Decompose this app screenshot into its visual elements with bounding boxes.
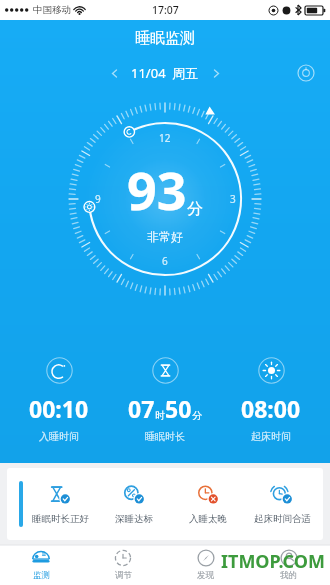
staticText: 分 [192, 409, 202, 422]
staticText: 我的 [280, 570, 297, 581]
button[interactable]: 入睡太晚 [171, 468, 245, 540]
staticText: 起床时间合适 [254, 513, 311, 525]
staticText: 17:07 [152, 3, 179, 17]
staticText: 非常好 [147, 229, 183, 244]
staticText: 睡眠时长 [145, 430, 185, 443]
button[interactable]: Sync [294, 61, 318, 85]
staticText: 3 [230, 192, 236, 206]
staticText: 发现 [197, 570, 214, 581]
button[interactable]: 起床时间合适 [245, 468, 319, 540]
staticText: 11/04 周五 [131, 64, 199, 82]
staticText: 睡眠监测 [135, 29, 195, 48]
staticText: 中国移动 [33, 4, 71, 16]
button[interactable]: Next day [203, 60, 229, 86]
staticText: ITMOP.COM [221, 549, 326, 574]
staticText: 起床时间 [251, 430, 291, 443]
staticText: 分 [187, 199, 203, 219]
staticText: 睡眠时长正好 [32, 513, 89, 525]
staticText: 调节 [115, 570, 132, 581]
button[interactable]: 00:10 [6, 357, 112, 443]
staticText: 9 [95, 192, 101, 206]
staticText: 入睡太晚 [189, 513, 227, 525]
button[interactable]: 发现 [164, 545, 247, 585]
staticText: 12 [159, 131, 171, 145]
staticText: 6 [162, 254, 168, 268]
staticText: 深睡达标 [115, 513, 153, 525]
button[interactable]: 我的 [247, 545, 330, 585]
button[interactable]: 调节 [82, 545, 164, 585]
staticText: 50 [165, 393, 192, 424]
button[interactable]: 深睡达标 [97, 468, 171, 540]
staticText: 监测 [33, 570, 50, 581]
button[interactable]: 睡眠时长正好 [23, 468, 97, 540]
staticText: 08:00 [241, 393, 301, 424]
button[interactable]: 07 [112, 357, 218, 443]
staticText: 时 [155, 409, 165, 422]
staticText: 00:10 [29, 393, 89, 424]
button[interactable]: 监测 [0, 545, 82, 585]
staticText: 93 [127, 154, 187, 225]
button[interactable]: 08:00 [218, 357, 324, 443]
staticText: 07 [128, 393, 155, 424]
staticText: 入睡时间 [39, 430, 79, 443]
button[interactable]: Previous day [101, 60, 127, 86]
